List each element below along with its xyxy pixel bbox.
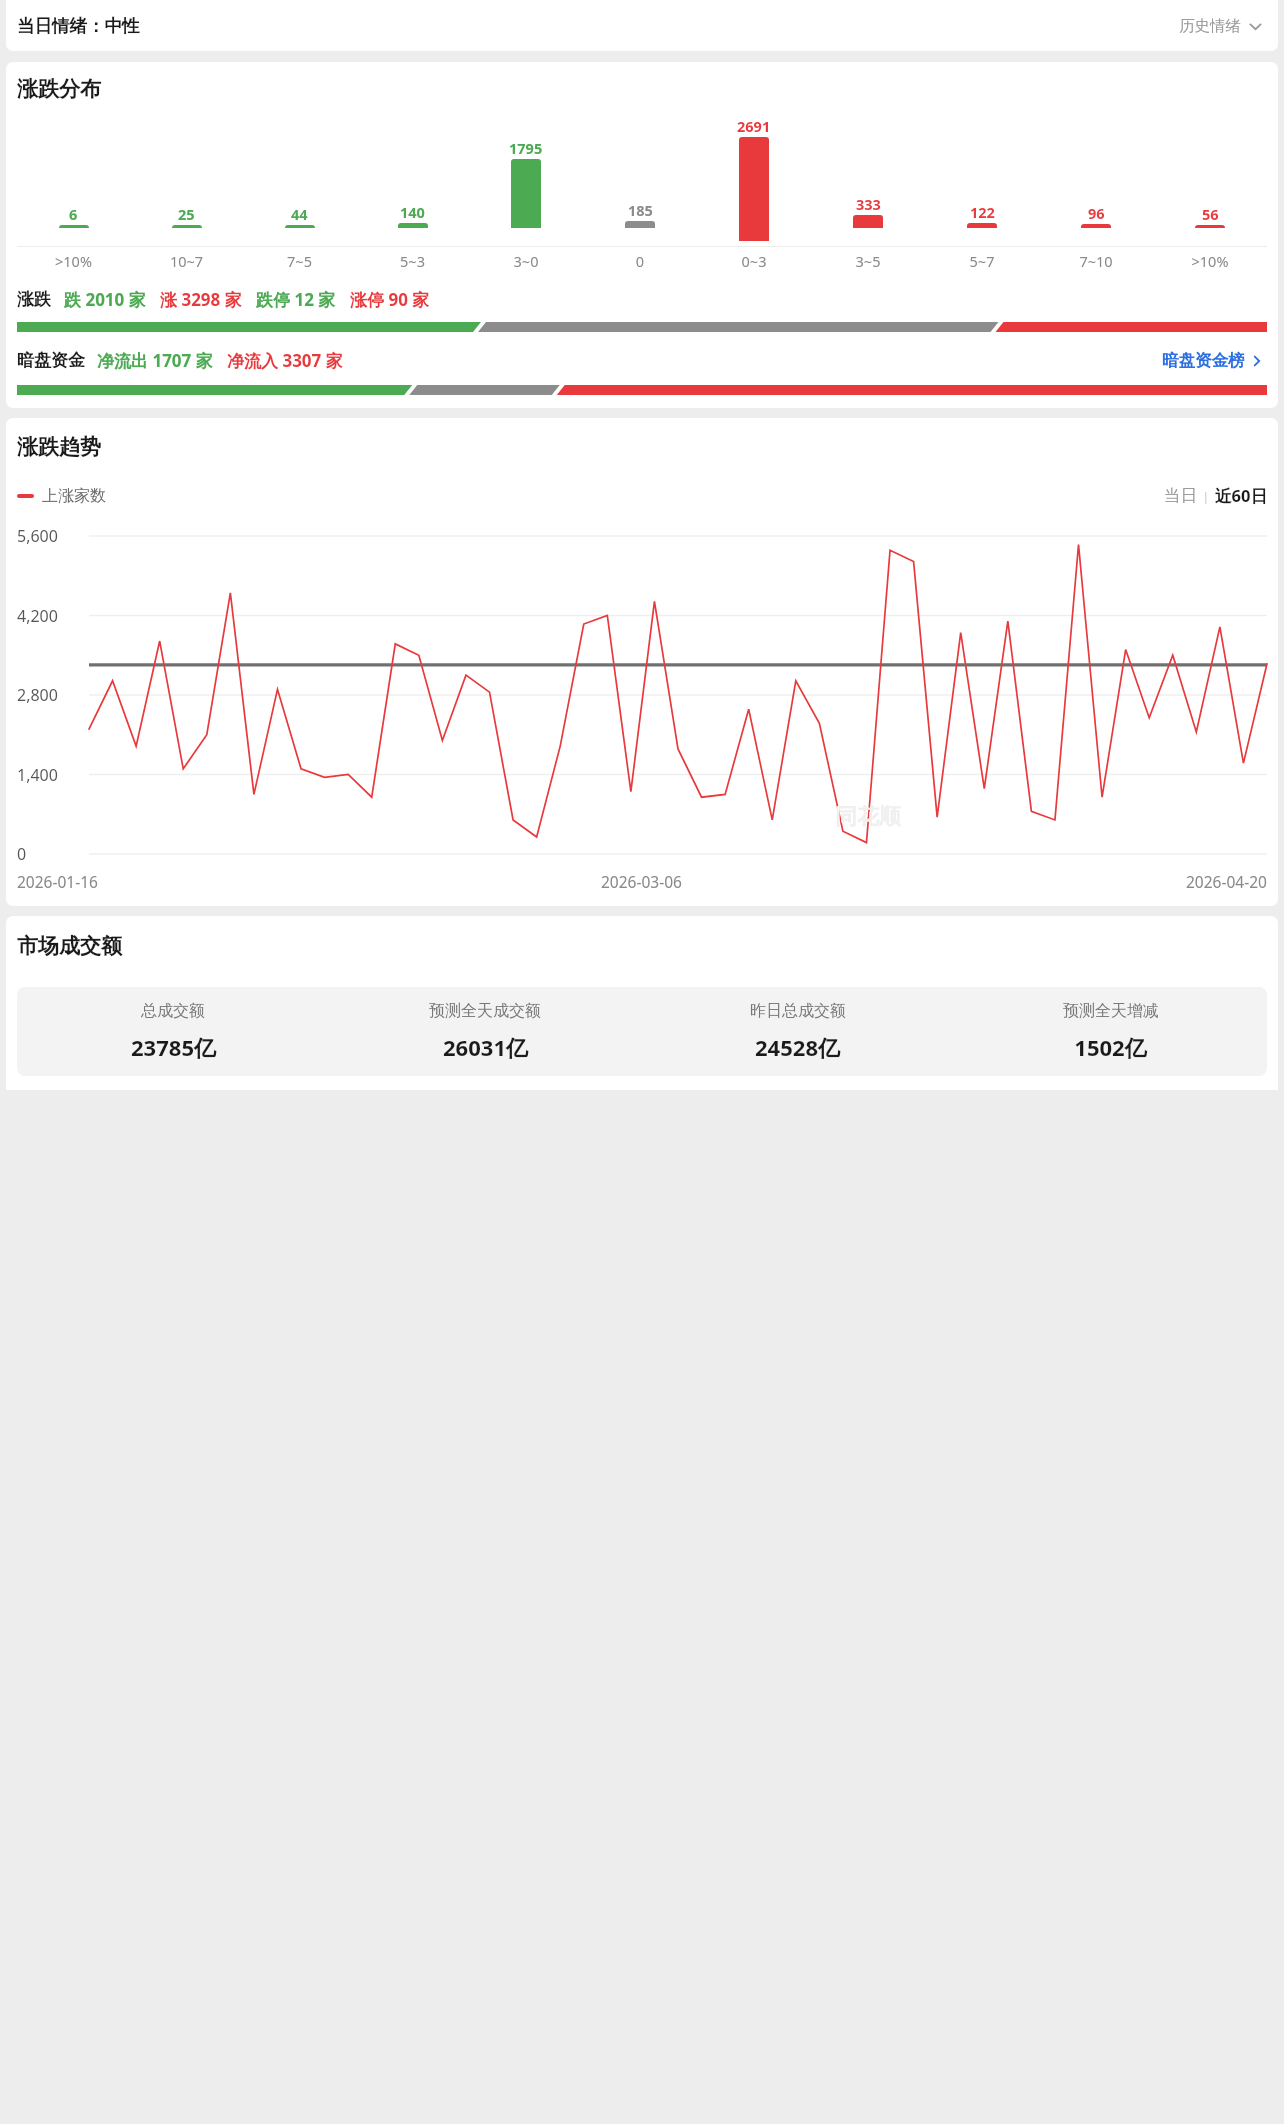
staticText: 10~7 [130, 251, 243, 271]
staticText: 涨 3298 家 [160, 288, 242, 311]
staticText: 122 [970, 202, 995, 222]
staticText: 25 [178, 204, 195, 224]
staticText: 总成交额 [141, 1001, 205, 1021]
staticText: 185 [628, 200, 653, 220]
staticText: 暗盘资金榜 [1162, 350, 1245, 371]
staticText: 44 [291, 204, 308, 224]
staticText: 2026-03-06 [601, 871, 682, 892]
staticText: 5~3 [356, 251, 469, 271]
staticText: 涨跌分布 [17, 76, 101, 102]
button[interactable]: 暗盘资金榜 [1159, 347, 1267, 374]
staticText: 2691 [737, 116, 771, 136]
staticText: 96 [1088, 203, 1105, 223]
staticText: 4,200 [17, 605, 58, 627]
staticText: 5~7 [925, 251, 1039, 271]
staticText: 1502亿 [1074, 1032, 1147, 1062]
staticText: 净流入 3307 家 [227, 349, 343, 372]
button[interactable]: 近60日 [1215, 484, 1267, 507]
staticText: 2,800 [17, 684, 58, 706]
staticText: 同花顺 [835, 803, 901, 831]
staticText: 当日 [1164, 485, 1197, 506]
staticText: 5,600 [17, 525, 58, 547]
staticText: 1,400 [17, 764, 58, 786]
staticText: 历史情绪 [1179, 16, 1241, 36]
button[interactable]: 当日 [1164, 485, 1197, 506]
staticText: ｜ [1197, 488, 1215, 504]
staticText: 7~10 [1039, 251, 1153, 271]
staticText: 0 [583, 251, 697, 271]
staticText: 预测全天增减 [1063, 1001, 1159, 1021]
staticText: 涨停 90 家 [350, 288, 430, 311]
staticText: 预测全天成交额 [429, 1001, 541, 1021]
staticText: 2026-04-20 [1186, 871, 1267, 892]
staticText: 26031亿 [443, 1032, 528, 1062]
staticText: >10% [17, 251, 130, 271]
staticText: 56 [1202, 204, 1219, 224]
staticText: 暗盘资金 [17, 350, 85, 371]
button[interactable]: 历史情绪 [1175, 12, 1267, 40]
staticText: 3~0 [469, 251, 583, 271]
staticText: 涨跌趋势 [17, 434, 101, 460]
staticText: 333 [856, 194, 881, 214]
staticText: 140 [400, 202, 425, 222]
staticText: 23785亿 [131, 1032, 216, 1062]
staticText: 2026-01-16 [17, 871, 98, 892]
staticText: 24528亿 [755, 1032, 840, 1062]
staticText: 涨跌 [17, 289, 51, 310]
staticText: 1795 [509, 138, 543, 158]
staticText: 7~5 [243, 251, 356, 271]
staticText: 净流出 1707 家 [97, 349, 213, 372]
staticText: 当日情绪：中性 [17, 15, 140, 37]
staticText: 0~3 [697, 251, 811, 271]
staticText: 上涨家数 [42, 486, 106, 506]
staticText: 昨日总成交额 [750, 1001, 846, 1021]
staticText: 近60日 [1215, 484, 1267, 507]
staticText: 市场成交额 [17, 933, 122, 959]
staticText: 0 [17, 843, 27, 865]
staticText: >10% [1153, 251, 1267, 271]
staticText: 跌停 12 家 [256, 288, 336, 311]
staticText: 跌 2010 家 [64, 288, 146, 311]
staticText: 6 [69, 204, 78, 224]
staticText: 3~5 [811, 251, 925, 271]
